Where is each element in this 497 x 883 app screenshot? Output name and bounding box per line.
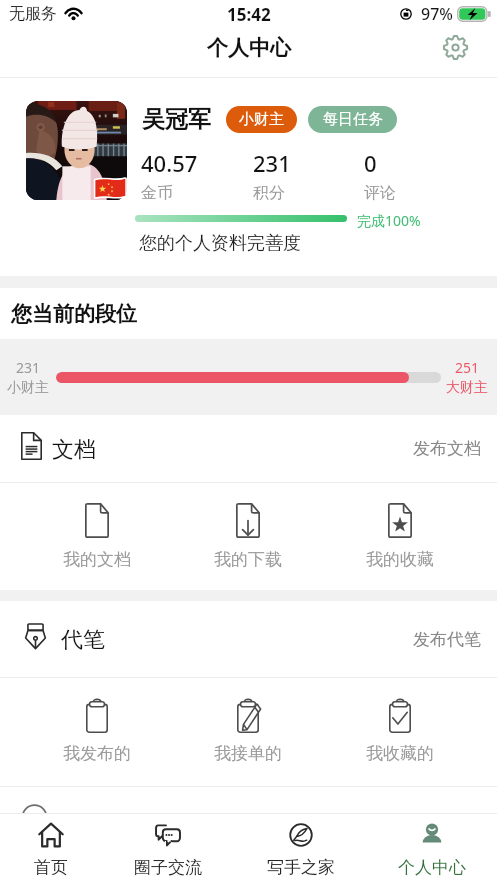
button[interactable]: Settings <box>435 27 475 67</box>
staticText: 97% <box>421 3 453 25</box>
button[interactable]: 个人中心 <box>367 814 497 883</box>
button[interactable]: 我的下载 <box>172 483 324 590</box>
staticText: 无服务 <box>9 4 57 24</box>
button[interactable]: 231 <box>253 148 364 203</box>
button[interactable]: 我的文档 <box>21 483 172 590</box>
staticText: 251 <box>455 358 480 377</box>
button[interactable]: 0 <box>364 148 444 203</box>
staticText: 我收藏的 <box>366 743 434 764</box>
button[interactable]: 写手之家 <box>235 814 367 883</box>
staticText: 写手之家 <box>267 857 335 878</box>
staticText: 我发布的 <box>63 743 131 764</box>
staticText: 个人中心 <box>207 35 291 61</box>
staticText: 我的文档 <box>63 549 131 570</box>
staticText: 代笔 <box>61 626 105 654</box>
staticText: 评论 <box>364 183 396 203</box>
button[interactable]: 40.57 <box>141 148 253 203</box>
staticText: 我的收藏 <box>366 549 434 570</box>
staticText: 您当前的段位 <box>11 301 137 327</box>
staticText: 个人中心 <box>398 857 466 878</box>
staticText: 15:42 <box>227 3 271 26</box>
button[interactable]: 每日任务 <box>308 106 397 133</box>
button[interactable]: 小财主 <box>226 106 297 133</box>
staticText: 231 <box>253 148 291 178</box>
staticText: 积分 <box>253 183 285 203</box>
button[interactable]: 发布代笔 <box>397 619 497 660</box>
button[interactable]: 我接单的 <box>172 678 324 786</box>
staticText: 小财主 <box>7 379 49 397</box>
staticText: 您的个人资料完善度 <box>139 232 301 255</box>
staticText: 完成100% <box>357 211 421 230</box>
staticText: 发布代笔 <box>413 629 481 650</box>
staticText: 231 <box>16 358 41 377</box>
staticText: 文档 <box>52 436 96 464</box>
staticText: 我的下载 <box>214 549 282 570</box>
staticText: 大财主 <box>446 379 488 397</box>
staticText: 小财主 <box>239 110 284 129</box>
button[interactable]: 发布文档 <box>397 428 497 469</box>
button[interactable]: 我的收藏 <box>324 483 476 590</box>
button[interactable]: 我收藏的 <box>324 678 476 786</box>
staticText: 发布文档 <box>413 438 481 459</box>
staticText: 圈子交流 <box>134 857 202 878</box>
staticText: 我接单的 <box>214 743 282 764</box>
button[interactable]: Avatar <box>26 101 127 200</box>
staticText: 0 <box>364 148 377 178</box>
staticText: 金币 <box>141 183 173 203</box>
staticText: 首页 <box>34 857 68 878</box>
staticText: 40.57 <box>141 148 198 178</box>
button[interactable]: 圈子交流 <box>101 814 235 883</box>
staticText: 每日任务 <box>323 110 383 129</box>
staticText: 吴冠军 <box>142 105 211 134</box>
button[interactable]: 首页 <box>0 814 101 883</box>
button[interactable]: 我发布的 <box>21 678 172 786</box>
